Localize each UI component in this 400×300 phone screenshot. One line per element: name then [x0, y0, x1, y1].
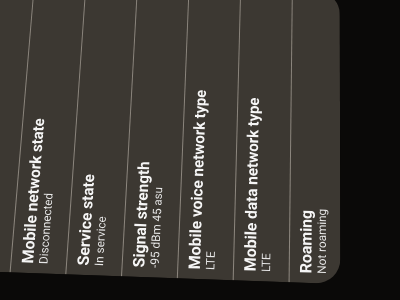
button[interactable]: Mobile data network type [234, 0, 292, 282]
staticText: Disconnected [36, 192, 56, 264]
staticText: LTE [259, 253, 273, 272]
staticText: Mobile network state [19, 118, 48, 264]
button[interactable]: Service state [66, 0, 137, 276]
staticText: Not roaming [314, 208, 329, 274]
staticText: Service state [74, 174, 98, 266]
staticText: Roaming [297, 209, 316, 274]
button[interactable]: Mobile network state [11, 0, 85, 274]
button[interactable]: Signal strength [122, 0, 188, 278]
button[interactable]: Network [0, 0, 34, 272]
staticText: LTE [203, 251, 218, 270]
staticText: -95 dBm 45 asu [147, 186, 165, 268]
staticText: In service [92, 215, 109, 266]
staticText: Mobile voice network type [185, 89, 210, 270]
staticText: Mobile data network type [241, 97, 263, 272]
button[interactable]: Mobile voice network type [178, 0, 240, 280]
button[interactable]: Roaming [290, 0, 340, 284]
staticText: Signal strength [130, 161, 153, 268]
